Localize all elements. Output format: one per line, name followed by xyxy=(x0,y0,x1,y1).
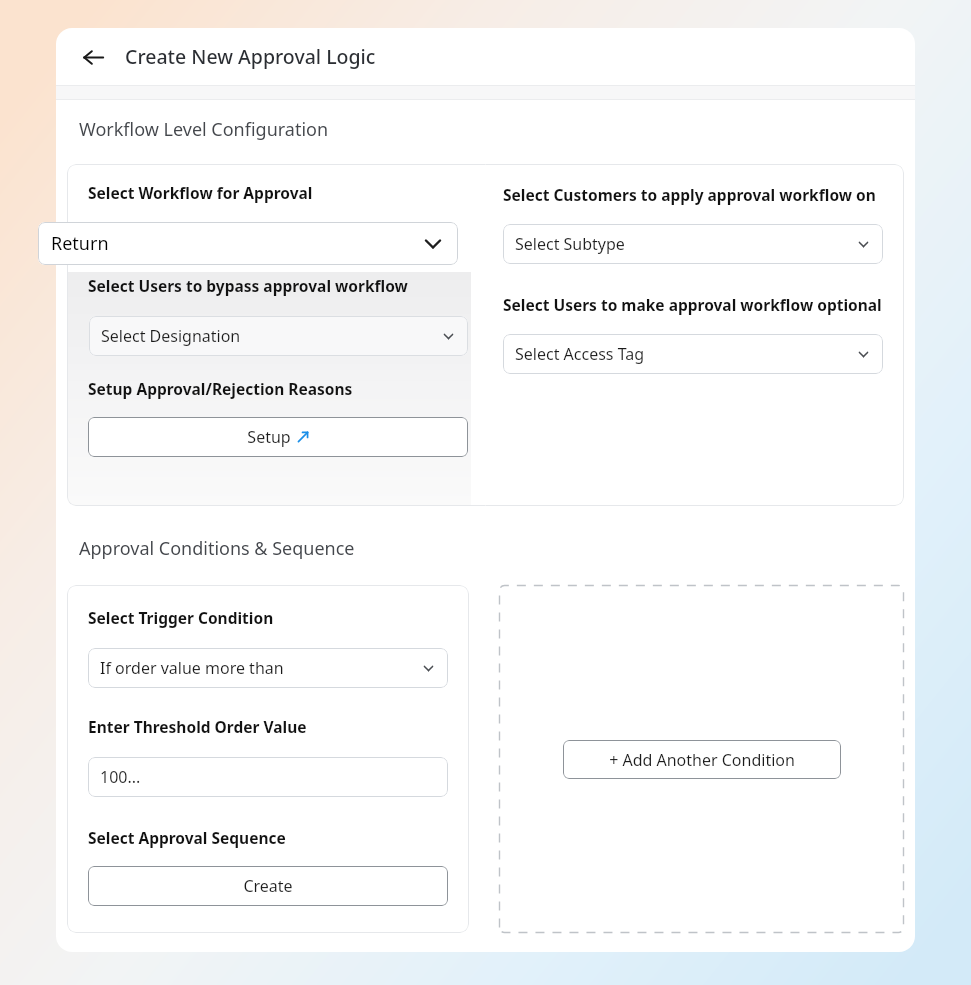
staticText: Select Trigger Condition xyxy=(88,607,274,628)
button[interactable]: Back xyxy=(76,40,110,74)
button[interactable]: Create xyxy=(88,866,448,906)
staticText: Select Workflow for Approval xyxy=(88,182,313,203)
staticText: Approval Conditions & Sequence xyxy=(79,536,355,561)
staticText: Workflow Level Configuration xyxy=(79,117,329,142)
staticText: Setup Approval/Rejection Reasons xyxy=(88,378,353,399)
staticText: Select Approval Sequence xyxy=(88,827,286,848)
button[interactable]: Select Subtype xyxy=(503,224,883,264)
staticText: Create xyxy=(243,875,293,897)
staticText: Setup xyxy=(247,426,291,448)
button[interactable]: + Add Another Condition xyxy=(563,740,841,779)
staticText: Select Users to make approval workflow o… xyxy=(503,294,882,315)
button[interactable]: Select Access Tag xyxy=(503,334,883,374)
staticText: Create New Approval Logic xyxy=(125,43,376,70)
staticText: Select Access Tag xyxy=(515,343,856,365)
staticText: Return xyxy=(51,231,422,256)
button[interactable]: Return xyxy=(38,222,458,265)
button[interactable]: If order value more than xyxy=(88,648,448,688)
button[interactable]: Setup xyxy=(88,417,468,457)
staticText: 100... xyxy=(100,766,141,788)
staticText: If order value more than xyxy=(100,657,421,679)
staticText: + Add Another Condition xyxy=(609,749,795,771)
staticText: Select Subtype xyxy=(515,233,856,255)
staticText: Enter Threshold Order Value xyxy=(88,716,307,737)
staticText: Select Users to bypass approval workflow xyxy=(88,275,408,296)
button[interactable]: Select Designation xyxy=(89,316,468,356)
button[interactable]: 100... xyxy=(88,757,448,797)
staticText: Select Designation xyxy=(101,325,441,347)
staticText: Select Customers to apply approval workf… xyxy=(503,184,876,205)
